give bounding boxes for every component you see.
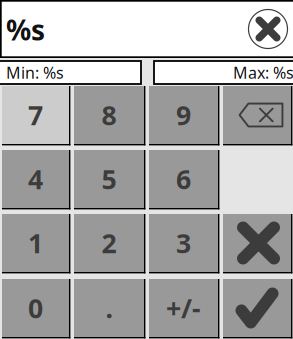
- staticText: 7: [28, 97, 43, 133]
- button[interactable]: 2: [74, 214, 145, 273]
- staticText: 0: [28, 290, 43, 326]
- button[interactable]: .: [74, 279, 145, 338]
- button[interactable]: 8: [74, 86, 145, 145]
- button[interactable]: Delete: [223, 86, 292, 145]
- staticText: 8: [101, 97, 116, 133]
- staticText: 2: [101, 225, 116, 261]
- button[interactable]: 7: [2, 86, 70, 145]
- button[interactable]: Min: %s: [0, 61, 141, 84]
- button[interactable]: 4: [2, 150, 70, 209]
- staticText: 6: [176, 161, 191, 197]
- staticText: Max: %s: [233, 62, 293, 83]
- staticText: 9: [176, 97, 191, 133]
- staticText: .: [105, 290, 112, 326]
- staticText: +/-: [166, 290, 201, 326]
- button[interactable]: 6: [149, 150, 219, 209]
- button[interactable]: 0: [2, 279, 70, 338]
- button[interactable]: 1: [2, 214, 70, 273]
- staticText: 5: [101, 161, 116, 197]
- button[interactable]: +/-: [149, 279, 219, 338]
- staticText: 4: [28, 161, 43, 197]
- button[interactable]: 5: [74, 150, 145, 209]
- button[interactable]: 3: [149, 214, 219, 273]
- staticText: Min: %s: [6, 62, 64, 83]
- button[interactable]: Cancel: [223, 214, 292, 273]
- button[interactable]: 9: [149, 86, 219, 145]
- staticText: %s: [6, 11, 45, 48]
- button[interactable]: Accept: [223, 279, 292, 338]
- button[interactable]: Close: [246, 7, 290, 51]
- staticText: 3: [176, 225, 191, 261]
- staticText: 1: [28, 225, 43, 261]
- button[interactable]: Max: %s: [154, 61, 293, 84]
